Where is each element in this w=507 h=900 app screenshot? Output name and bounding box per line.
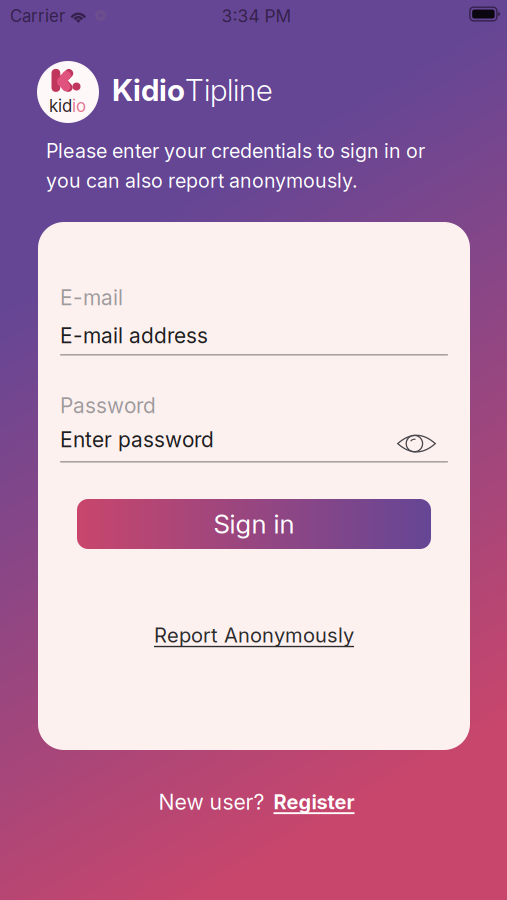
staticText: you can also report anonymously. (46, 169, 358, 192)
staticText: 3:34 PM (221, 5, 291, 26)
staticText: Register (273, 790, 354, 814)
staticText: E-mail (60, 285, 123, 310)
staticText: Kidio (112, 72, 185, 108)
button[interactable]: Report Anonymously (38, 623, 470, 647)
staticText: Enter password (60, 427, 214, 452)
staticText: io (72, 96, 86, 116)
button[interactable]: Sign in (77, 499, 431, 549)
button[interactable]: New user? (3, 789, 507, 815)
staticText: E-mail address (60, 323, 208, 348)
staticText: Report Anonymously (154, 623, 354, 647)
staticText: kid (49, 96, 72, 116)
staticText: Carrier (10, 6, 65, 26)
staticText: New user? (158, 789, 264, 815)
staticText: Sign in (213, 508, 294, 540)
staticText: Tipline (185, 72, 273, 108)
staticText: Password (60, 393, 156, 418)
button[interactable]: Show password (391, 427, 442, 460)
staticText: Please enter your credentials to sign in… (46, 139, 425, 163)
